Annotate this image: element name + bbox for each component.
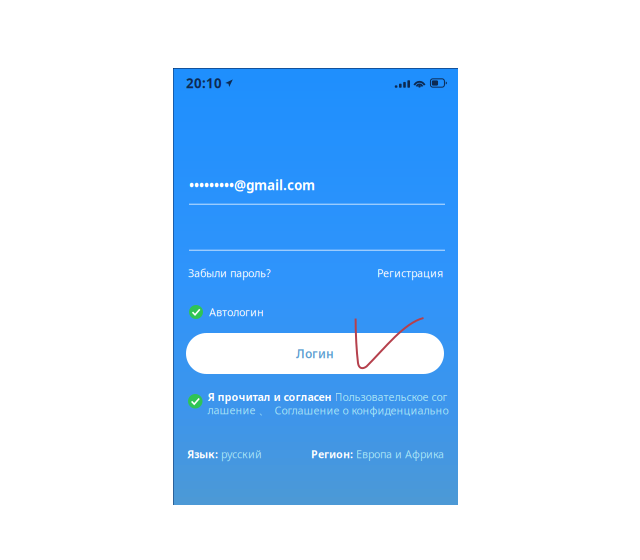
staticText: Логин (296, 345, 334, 361)
button[interactable]: Регистрация (377, 264, 443, 282)
staticText: Регистрация (377, 266, 443, 280)
button[interactable]: Я прочитал и согласен (188, 390, 443, 420)
staticText: Европа и Африка (356, 447, 444, 461)
staticText: Пользовательское сог (334, 390, 447, 404)
button[interactable]: Регион: (311, 446, 444, 462)
button[interactable]: E-mail (189, 175, 442, 205)
staticText: Автологин (209, 305, 264, 319)
staticText: •••••••••@gmail.com (189, 176, 315, 194)
button[interactable]: Автологин (189, 304, 309, 320)
staticText: лашение 、 (207, 403, 269, 417)
staticText: Язык: (187, 447, 218, 461)
staticText: Забыли пароль? (188, 266, 271, 280)
staticText: Регион: (311, 447, 353, 461)
staticText: 20:10 (186, 74, 222, 92)
button[interactable]: Язык: (187, 446, 262, 462)
staticText: Я прочитал и согласен (207, 390, 331, 404)
staticText: русский (221, 447, 262, 461)
button[interactable]: Логин (186, 333, 444, 374)
button[interactable]: Password (189, 221, 442, 251)
staticText: Соглашение о конфиденциально (274, 403, 448, 417)
button[interactable]: Забыли пароль? (188, 264, 271, 282)
